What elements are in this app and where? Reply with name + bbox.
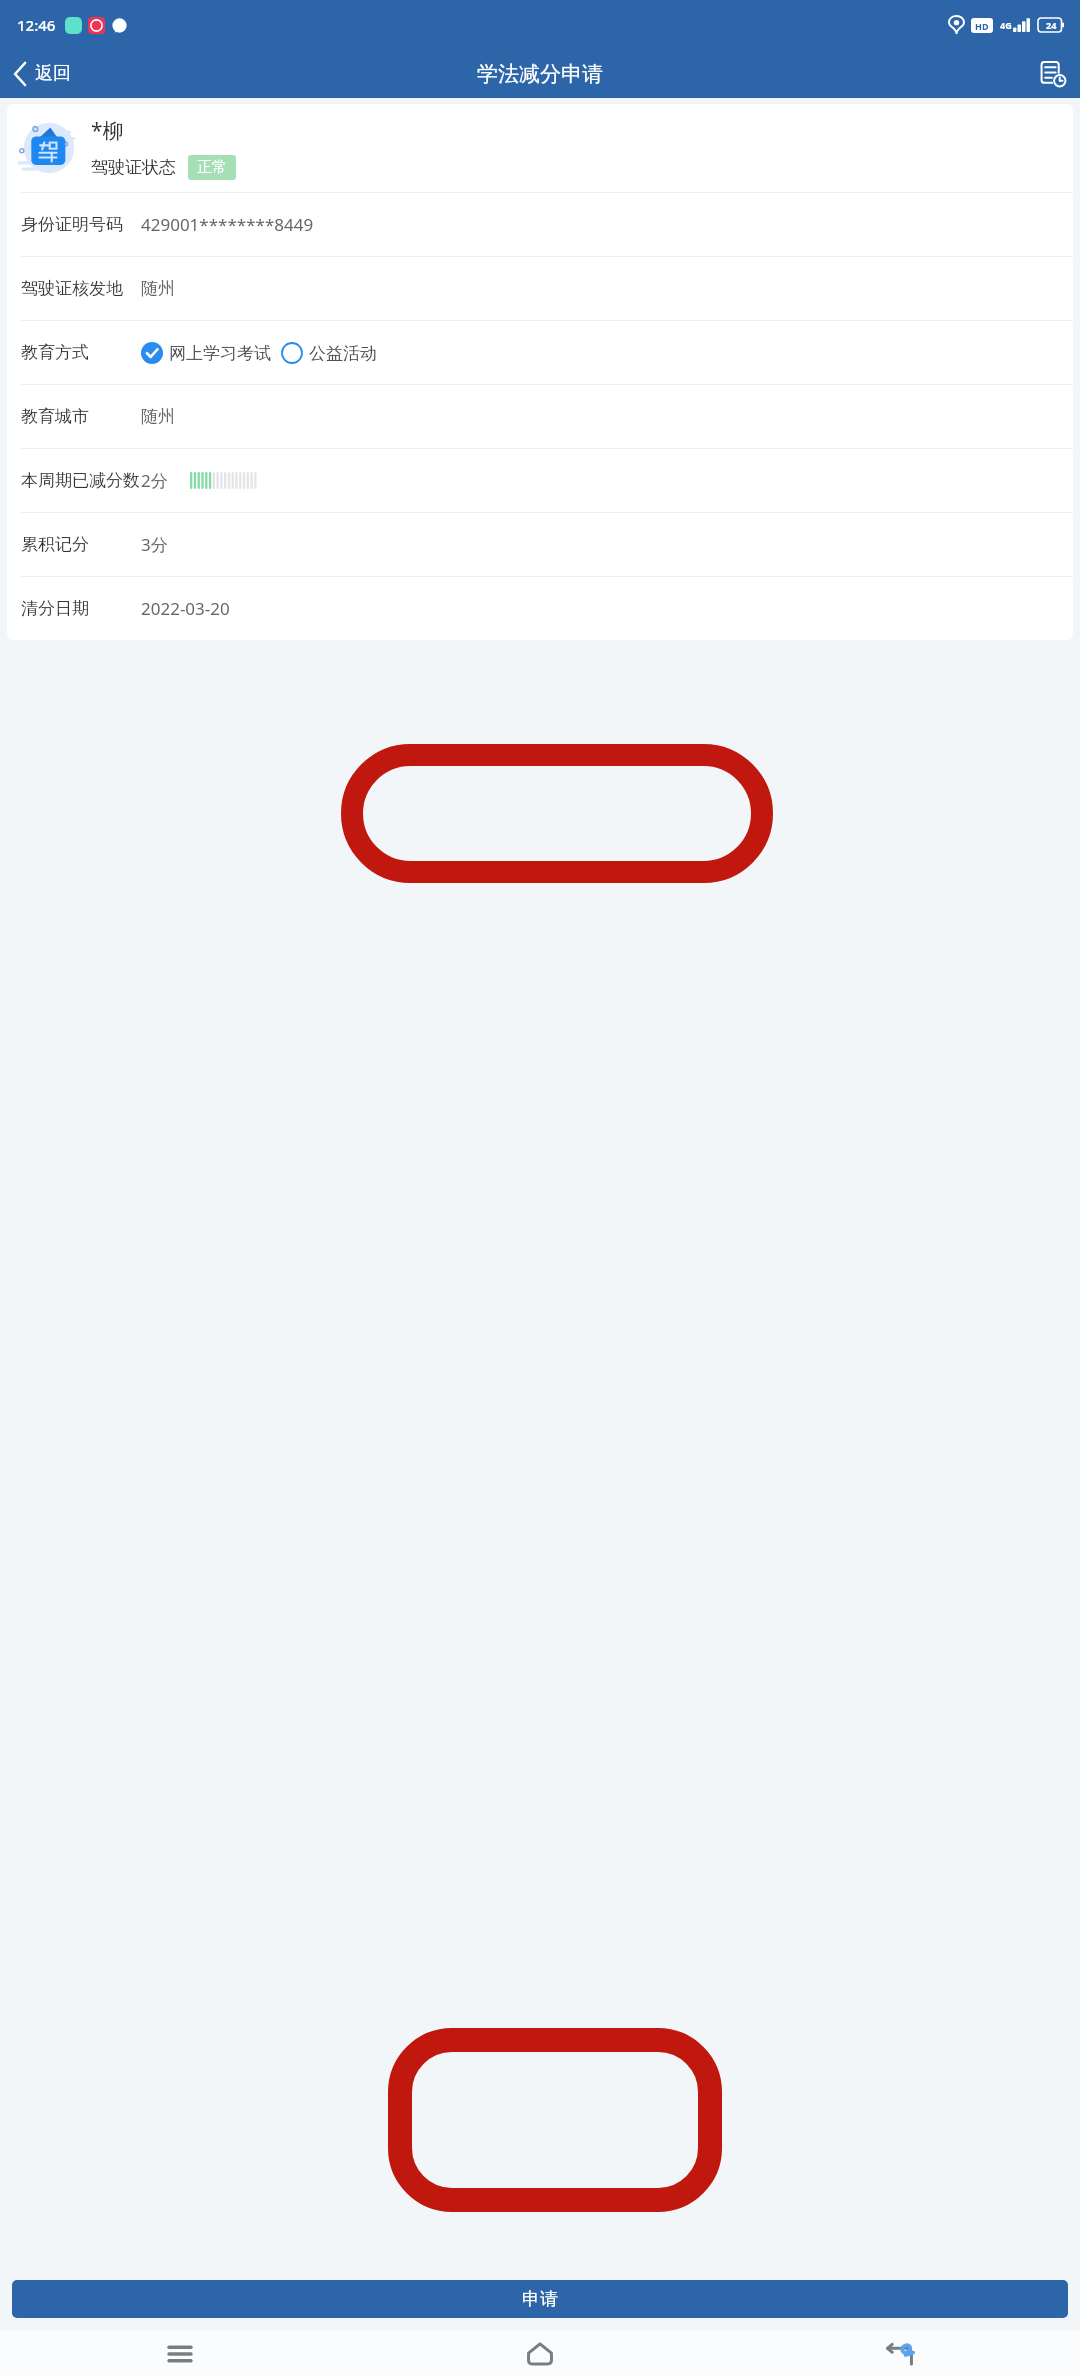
staticText: 网上学习考试 (169, 343, 271, 364)
button[interactable]: 本周期已减分数 (7, 449, 1073, 512)
staticText: 学法减分申请 (477, 61, 603, 87)
button[interactable]: 驾驶证核发地 (7, 257, 1073, 320)
button[interactable]: 身份证明号码 (7, 193, 1073, 256)
staticText: 随州 (141, 278, 175, 299)
button[interactable]: 返回 (720, 2331, 1080, 2376)
staticText: 清分日期 (21, 598, 89, 619)
staticText: 24 (1046, 19, 1057, 31)
button[interactable]: 清分日期 (7, 577, 1073, 640)
staticText: 4G (1000, 19, 1012, 31)
button[interactable]: 教育城市 (7, 385, 1073, 448)
staticText: 返回 (35, 62, 71, 85)
button[interactable]: 主页 (360, 2331, 720, 2376)
button[interactable]: 教育方式 (7, 321, 1073, 384)
staticText: 本周期已减分数 (21, 470, 140, 491)
staticText: HD (975, 20, 989, 32)
staticText: 公益活动 (309, 343, 377, 364)
staticText: 教育城市 (21, 406, 89, 427)
staticText: 12:46 (17, 15, 56, 35)
staticText: 2分 (141, 469, 168, 492)
staticText: 身份证明号码 (21, 214, 123, 235)
staticText: 2022-03-20 (141, 597, 230, 620)
staticText: 教育方式 (21, 342, 89, 363)
staticText: 3分 (141, 533, 168, 556)
staticText: *柳 (91, 116, 124, 145)
button[interactable]: 申请记录 (1026, 53, 1080, 95)
staticText: 驾驶证状态 (91, 157, 176, 178)
button[interactable]: 申请 (12, 2280, 1068, 2318)
staticText: 申请 (522, 2288, 558, 2311)
staticText: 驾驶证核发地 (21, 278, 123, 299)
staticText: 累积记分 (21, 534, 89, 555)
button[interactable]: 网上学习考试 (141, 342, 271, 364)
button[interactable]: 公益活动 (281, 342, 377, 364)
staticText: 正常 (197, 158, 227, 177)
button[interactable]: 最近任务 (0, 2331, 360, 2376)
button[interactable]: 累积记分 (7, 513, 1073, 576)
button[interactable]: 返回 (0, 56, 85, 91)
staticText: 429001********8449 (141, 213, 314, 236)
staticText: 随州 (141, 406, 175, 427)
